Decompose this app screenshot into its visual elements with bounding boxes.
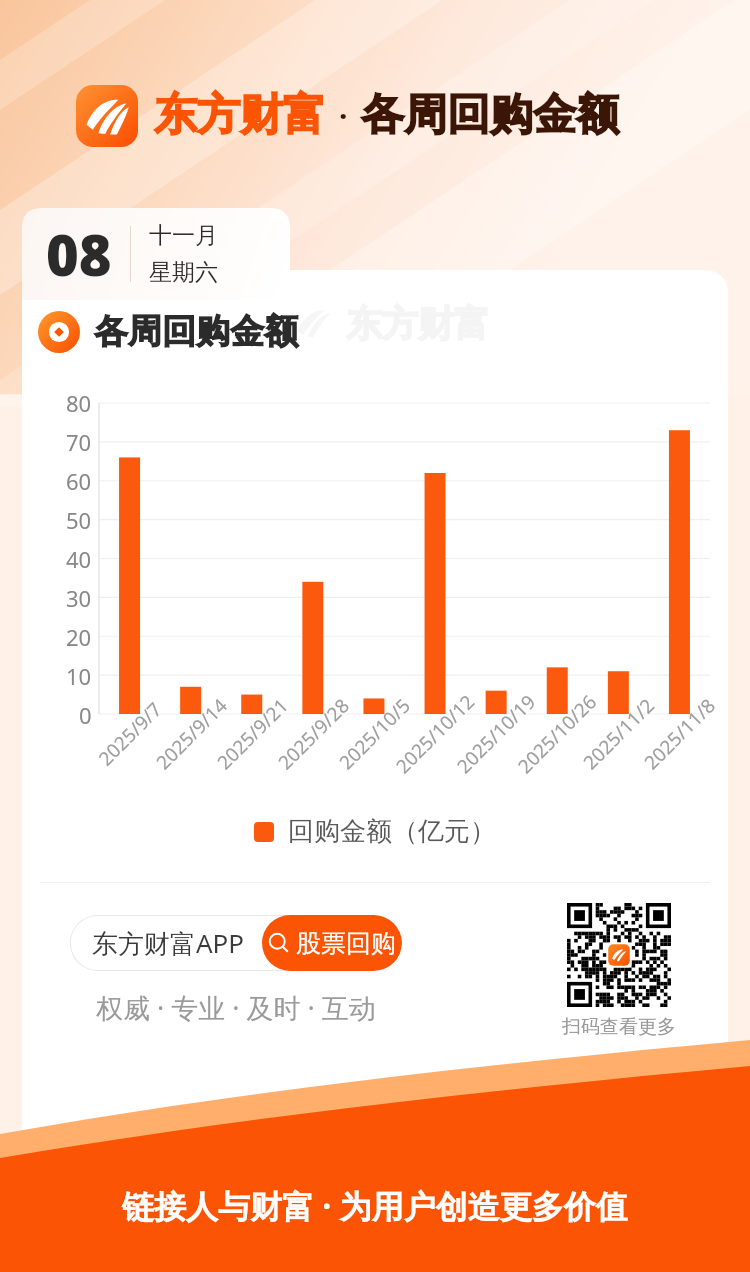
- staticText: 2025/10/5: [333, 693, 416, 775]
- staticText: 回购金额（亿元）: [288, 815, 496, 848]
- staticText: 2025/10/26: [512, 689, 602, 779]
- staticText: 08: [46, 216, 112, 292]
- staticText: 各周回购金额: [361, 88, 619, 142]
- staticText: 东方财富APP: [92, 925, 245, 961]
- staticText: 70: [66, 427, 92, 457]
- staticText: 2025/9/28: [272, 693, 355, 775]
- staticText: 2025/10/19: [451, 689, 541, 779]
- staticText: 2025/11/2: [577, 693, 660, 775]
- staticText: ·: [326, 98, 361, 133]
- staticText: 30: [66, 583, 92, 613]
- staticText: 链接人与财富 · 为用户创造更多价值: [122, 1184, 628, 1228]
- staticText: 东方财富: [346, 301, 490, 346]
- staticText: 2025/9/7: [92, 696, 167, 771]
- button[interactable]: 股票回购: [262, 915, 402, 971]
- button[interactable]: 东方财富APP: [70, 915, 402, 971]
- staticText: 2025/9/14: [150, 693, 233, 775]
- staticText: 80: [66, 388, 92, 418]
- staticText: 2025/9/21: [211, 693, 294, 775]
- staticText: 40: [66, 544, 92, 574]
- staticText: 10: [66, 661, 92, 691]
- staticText: 十一月: [149, 221, 218, 250]
- staticText: 60: [66, 466, 92, 496]
- staticText: 2025/11/8: [638, 693, 721, 775]
- staticText: 2025/10/12: [390, 689, 480, 779]
- staticText: 20: [66, 622, 92, 652]
- staticText: 各周回购金额: [94, 310, 298, 353]
- staticText: 星期六: [149, 258, 218, 287]
- staticText: 0: [79, 700, 92, 730]
- staticText: 股票回购: [296, 928, 396, 959]
- staticText: 权威 · 专业 · 及时 · 互动: [96, 989, 376, 1026]
- staticText: 东方财富: [154, 88, 326, 142]
- staticText: 扫码查看更多: [562, 1015, 676, 1039]
- staticText: 50: [66, 505, 92, 535]
